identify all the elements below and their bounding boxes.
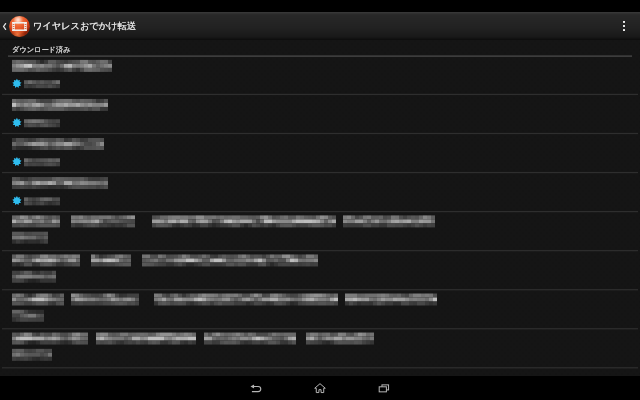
button[interactable] xyxy=(0,251,640,290)
button[interactable] xyxy=(0,173,640,212)
staticText: ワイヤレスおでかけ転送 xyxy=(33,20,137,32)
button[interactable] xyxy=(0,212,640,251)
button[interactable]: Home xyxy=(308,376,332,400)
button[interactable] xyxy=(0,56,640,95)
button[interactable] xyxy=(0,329,640,368)
button[interactable]: Back xyxy=(244,376,268,400)
button[interactable] xyxy=(0,134,640,173)
button[interactable]: Navigate up xyxy=(1,12,8,40)
button[interactable] xyxy=(0,95,640,134)
button[interactable] xyxy=(0,290,640,329)
button[interactable]: More options xyxy=(608,12,640,40)
staticText: ダウンロード済み xyxy=(12,45,71,54)
button[interactable]: Recent apps xyxy=(372,376,396,400)
